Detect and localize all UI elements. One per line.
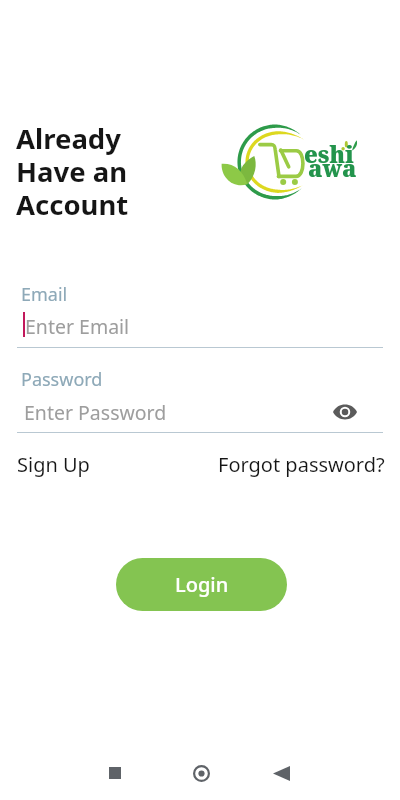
staticText: awa [308,152,357,183]
button[interactable]: Show password [328,395,362,429]
staticText: Enter Password [24,399,167,426]
button[interactable]: Forgot password? [218,451,385,478]
staticText: Enter Email [25,313,130,340]
staticText: eshi [304,138,354,169]
staticText: Already Have an Account [16,120,129,223]
staticText: Login [175,571,229,598]
button[interactable]: Login [116,558,287,611]
button[interactable]: Recent apps [73,749,157,797]
button[interactable]: Email [17,278,383,348]
staticText: Password [21,367,103,392]
button[interactable]: Back [239,749,323,797]
button[interactable]: Home [159,749,243,797]
staticText: Forgot password? [218,451,385,478]
button[interactable]: Password [17,364,383,434]
staticText: Email [21,282,68,307]
button[interactable]: Sign Up [17,451,90,478]
staticText: Sign Up [17,451,90,478]
